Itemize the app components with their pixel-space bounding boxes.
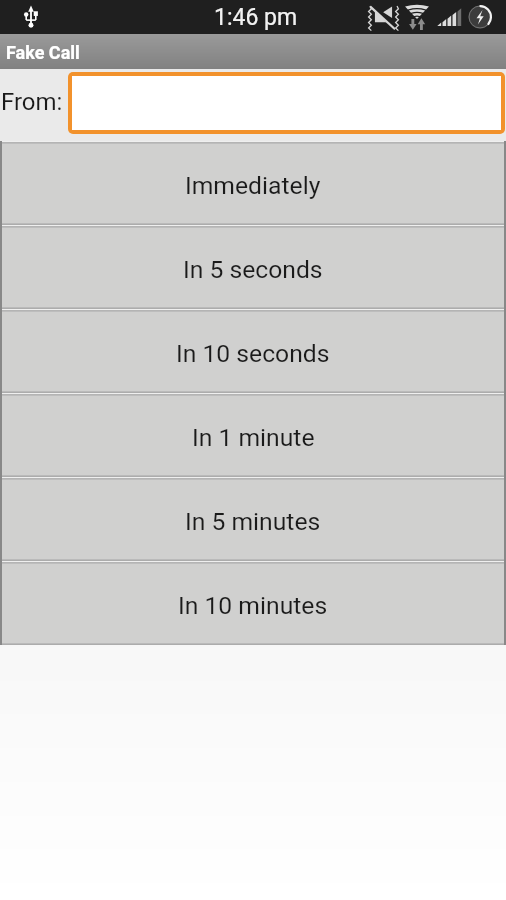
staticText: In 10 minutes bbox=[178, 591, 328, 620]
other: Vibrate mode bbox=[366, 4, 399, 30]
staticText: 1:46 pm bbox=[214, 4, 298, 31]
staticText: Immediately bbox=[185, 171, 321, 200]
button[interactable]: In 10 minutes bbox=[0, 561, 506, 645]
staticText: Fake Call bbox=[6, 42, 80, 63]
other: Signal strength bbox=[437, 5, 462, 29]
button[interactable]: In 5 minutes bbox=[0, 477, 506, 561]
button[interactable]: Immediately bbox=[0, 141, 506, 225]
other: USB connected bbox=[23, 4, 39, 30]
staticText: From: bbox=[1, 88, 63, 116]
staticText: In 5 minutes bbox=[185, 507, 321, 536]
staticText: In 5 seconds bbox=[183, 255, 323, 284]
button[interactable]: In 5 seconds bbox=[0, 225, 506, 309]
button[interactable]: In 10 seconds bbox=[0, 309, 506, 393]
staticText: In 10 seconds bbox=[176, 339, 330, 368]
other: Battery charging bbox=[468, 5, 492, 29]
other: Wi-Fi bbox=[404, 5, 430, 30]
staticText: In 1 minute bbox=[192, 423, 315, 452]
button[interactable]: In 1 minute bbox=[0, 393, 506, 477]
